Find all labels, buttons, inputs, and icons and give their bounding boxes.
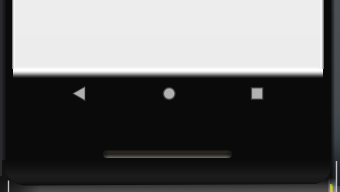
other: Navigation bar xyxy=(0,0,340,192)
